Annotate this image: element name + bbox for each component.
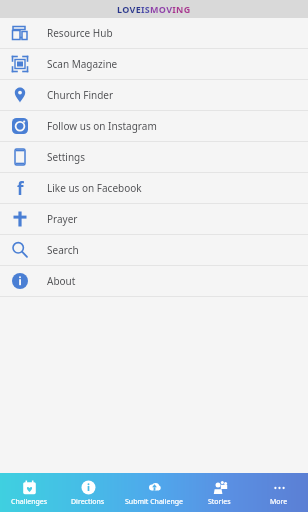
- button[interactable]: Submit Challenge: [117, 473, 190, 512]
- button[interactable]: f: [0, 173, 308, 203]
- staticText: Stories: [208, 497, 231, 507]
- button[interactable]: More: [249, 473, 308, 512]
- button[interactable]: Scan Magazine: [0, 49, 308, 79]
- staticText: Scan Magazine: [47, 57, 118, 71]
- staticText: Directions: [71, 497, 105, 507]
- button[interactable]: Settings: [0, 142, 308, 172]
- staticText: Like us on Facebook: [47, 181, 142, 195]
- button[interactable]: Directions: [58, 473, 117, 512]
- button[interactable]: Church Finder: [0, 80, 308, 110]
- button[interactable]: Stories: [190, 473, 249, 512]
- button[interactable]: Resource Hub: [0, 18, 308, 48]
- button[interactable]: About: [0, 266, 308, 296]
- staticText: Follow us on Instagram: [47, 119, 157, 133]
- staticText: More: [270, 497, 288, 507]
- button[interactable]: Prayer: [0, 204, 308, 234]
- staticText: Submit Challenge: [125, 497, 183, 507]
- button[interactable]: Search: [0, 235, 308, 265]
- button[interactable]: Challenges: [0, 473, 58, 512]
- staticText: Prayer: [47, 212, 78, 226]
- staticText: About: [47, 274, 76, 288]
- staticText: Challenges: [11, 497, 48, 507]
- staticText: Church Finder: [47, 88, 114, 102]
- staticText: Resource Hub: [47, 26, 113, 40]
- staticText: Search: [47, 243, 79, 257]
- staticText: LOVEISMOVING: [117, 3, 191, 15]
- button[interactable]: Follow us on Instagram: [0, 111, 308, 141]
- staticText: f: [17, 177, 24, 199]
- staticText: Settings: [47, 150, 86, 164]
